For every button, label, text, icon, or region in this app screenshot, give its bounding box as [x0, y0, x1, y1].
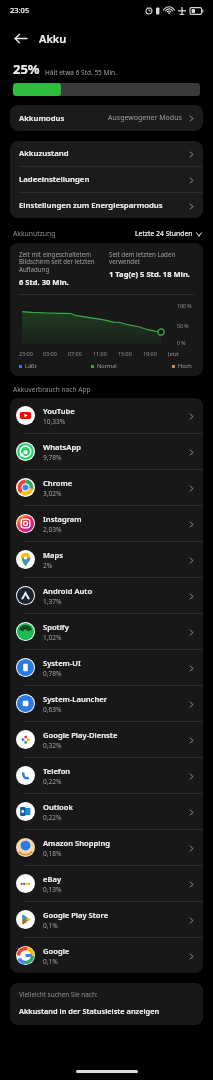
staticText: Instagram [43, 514, 82, 524]
button[interactable]: System-UI [10, 650, 203, 686]
staticText: 1,02% [43, 633, 62, 642]
staticText: Outlook [43, 802, 73, 812]
staticText: Google [43, 946, 70, 956]
button[interactable]: Akkuzustand [10, 141, 203, 167]
staticText: 10,33% [43, 417, 66, 426]
button[interactable]: Einstellungen zum Energiesparmodus [10, 193, 203, 218]
staticText: Letzte 24 Stunden [135, 229, 193, 238]
staticText: 23:00 [19, 350, 33, 357]
button[interactable]: YouTube [10, 398, 203, 434]
staticText: 0,1% [43, 921, 58, 930]
button[interactable]: Akkumodus [10, 105, 203, 131]
button[interactable]: Android Auto [10, 578, 203, 614]
staticText: 1,37% [43, 597, 62, 606]
staticText: eBay [43, 874, 62, 884]
staticText: Jetzt [168, 350, 179, 357]
staticText: 0,78% [43, 669, 62, 678]
button[interactable]: Spotify [10, 614, 203, 650]
staticText: Chrome [43, 478, 73, 488]
staticText: Seit dem letzten Laden verwendet [109, 250, 176, 266]
button[interactable]: Instagram [10, 506, 203, 542]
staticText: 2,03% [43, 525, 62, 534]
staticText: 2% [43, 561, 53, 570]
button[interactable]: Ladeeinstellungen [10, 167, 203, 193]
staticText: Hält etwa 6 Std. 55 Min. [45, 68, 117, 77]
staticText: 0,22% [43, 813, 62, 822]
staticText: 3,02% [43, 489, 62, 498]
button[interactable]: WhatsApp [10, 434, 203, 470]
staticText: System-UI [43, 658, 81, 668]
button[interactable]: Amazon Shopping [10, 830, 203, 866]
staticText: Vielleicht suchen Sie nach: [19, 990, 98, 999]
staticText: 9,78% [43, 453, 62, 462]
staticText: 0,32% [43, 741, 62, 750]
staticText: 19:00 [143, 350, 157, 357]
staticText: 50 % [177, 322, 189, 329]
staticText: Akkustand in der Statusleiste anzeigen [19, 1006, 160, 1016]
staticText: Akkuverbrauch nach App [13, 385, 91, 394]
staticText: Android Auto [43, 586, 93, 596]
staticText: Akkuzustand [19, 148, 69, 159]
staticText: 100 % [177, 302, 192, 309]
staticText: WhatsApp [43, 442, 81, 452]
button[interactable]: Google Play Store [10, 902, 203, 938]
staticText: 6 Std. 30 Min. [19, 277, 69, 287]
staticText: 1 Tag(e) 5 Std. 18 Min. [109, 269, 190, 279]
button[interactable]: Google [10, 938, 203, 973]
staticText: 07:00 [68, 350, 82, 357]
staticText: 03:00 [43, 350, 57, 357]
button[interactable]: Letzte 24 Stunden [135, 229, 202, 238]
staticText: Google Play Store [43, 910, 109, 920]
staticText: Akkumodus [19, 113, 65, 124]
button[interactable]: Back [9, 27, 31, 49]
staticText: Normal [97, 362, 117, 370]
button[interactable]: Outlook [10, 794, 203, 830]
staticText: 11:00 [93, 350, 107, 357]
staticText: 25% [13, 60, 40, 78]
staticText: Hoch [178, 362, 192, 370]
staticText: Einstellungen zum Energiesparmodus [19, 200, 163, 211]
staticText: Ausgewogener Modus [108, 113, 182, 123]
staticText: Läßt [25, 362, 37, 370]
button[interactable]: Telefon [10, 758, 203, 794]
staticText: 0,13% [43, 885, 62, 894]
staticText: Telefon [43, 766, 71, 776]
button[interactable]: Maps [10, 542, 203, 578]
staticText: 0,22% [43, 777, 62, 786]
staticText: System-Launcher [43, 694, 107, 704]
staticText: Akkunutzung [13, 229, 56, 238]
staticText: Ladeeinstellungen [19, 174, 90, 185]
staticText: Zeit mit eingeschaltetem Bildschirm seit… [19, 250, 95, 274]
staticText: 0,63% [43, 705, 62, 714]
button[interactable]: Vielleicht suchen Sie nach: [10, 983, 203, 1025]
staticText: 0,1% [43, 957, 58, 966]
staticText: 0 % [177, 339, 186, 346]
button[interactable]: Google Play-Dienste [10, 722, 203, 758]
staticText: YouTube [43, 406, 75, 416]
staticText: Amazon Shopping [43, 838, 110, 848]
button[interactable]: Chrome [10, 470, 203, 506]
staticText: Maps [43, 550, 63, 560]
staticText: Spotify [43, 622, 69, 632]
staticText: 0,18% [43, 849, 62, 858]
staticText: 15:00 [118, 350, 132, 357]
staticText: 23:05 [10, 5, 30, 15]
staticText: Google Play-Dienste [43, 730, 118, 740]
button[interactable]: System-Launcher [10, 686, 203, 722]
staticText: Akku [39, 31, 67, 46]
button[interactable]: eBay [10, 866, 203, 902]
